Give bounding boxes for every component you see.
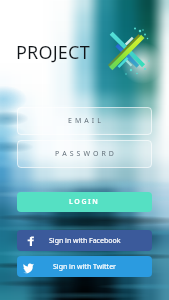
staticText: PROJECT bbox=[16, 40, 90, 65]
button[interactable]: Sign in with Twitter bbox=[17, 256, 152, 277]
staticText: Sign in with Facebook bbox=[49, 236, 121, 246]
staticText: Sign in with Twitter bbox=[53, 262, 116, 272]
button[interactable]: Sign in with Facebook bbox=[17, 230, 152, 251]
button[interactable]: E M A I L bbox=[17, 107, 152, 135]
staticText: P A S S W O R D bbox=[55, 149, 115, 159]
button[interactable]: LOGIN bbox=[17, 192, 152, 212]
staticText: LOGIN bbox=[69, 197, 100, 207]
button[interactable]: P A S S W O R D bbox=[17, 140, 152, 168]
staticText: E M A I L bbox=[68, 116, 102, 126]
